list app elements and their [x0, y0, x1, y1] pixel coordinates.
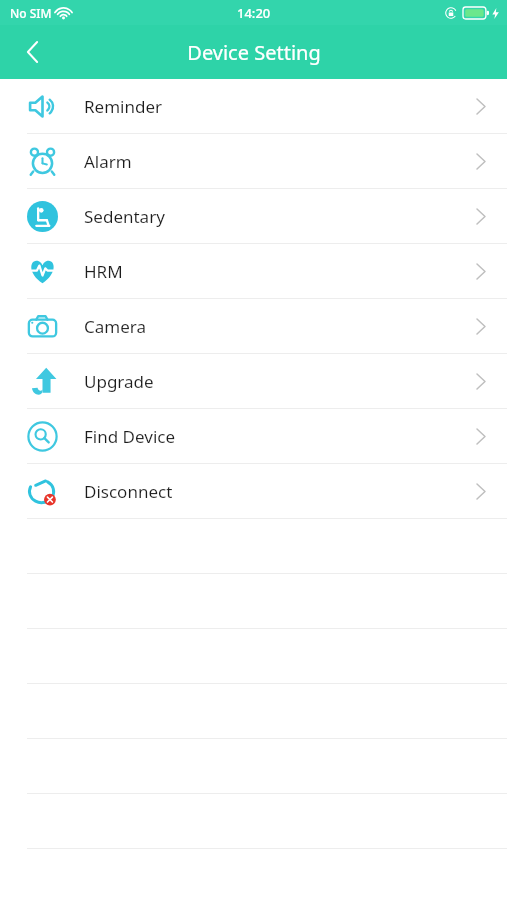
staticText: No SIM: [10, 5, 52, 21]
button[interactable]: Back: [0, 25, 64, 79]
staticText: Device Setting: [187, 39, 321, 66]
button[interactable]: Disconnect: [0, 464, 507, 518]
button[interactable]: Find Device: [0, 409, 507, 463]
staticText: Reminder: [84, 95, 163, 118]
staticText: Sedentary: [84, 205, 165, 228]
staticText: Alarm: [84, 150, 132, 173]
button[interactable]: Camera: [0, 299, 507, 353]
button[interactable]: Reminder: [0, 79, 507, 133]
staticText: Upgrade: [84, 370, 154, 393]
button[interactable]: Alarm: [0, 134, 507, 188]
staticText: Disconnect: [84, 480, 173, 503]
staticText: 14:20: [237, 4, 271, 22]
staticText: Camera: [84, 315, 146, 338]
button[interactable]: Sedentary: [0, 189, 507, 243]
button[interactable]: HRM: [0, 244, 507, 298]
button[interactable]: Upgrade: [0, 354, 507, 408]
staticText: HRM: [84, 260, 123, 283]
staticText: Find Device: [84, 425, 176, 448]
